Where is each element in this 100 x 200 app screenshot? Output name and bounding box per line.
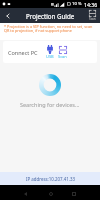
staticText: Scan [58,54,67,59]
staticText: IP address:10.207.41.33 [26,176,75,182]
staticText: Connect PC [8,49,38,56]
button[interactable]: Home [44,187,57,200]
button[interactable]: Back [0,8,15,23]
button[interactable]: Scan QR code [86,9,99,22]
staticText: Searching for devices... [20,101,80,108]
staticText: Projection Guide [26,12,75,20]
staticText: 10 % [72,1,82,7]
button[interactable]: Recent apps [67,187,80,200]
button[interactable]: Back [19,187,32,200]
button[interactable]: USB [46,45,54,59]
button[interactable]: Scan [58,46,67,59]
staticText: Scan [89,17,96,21]
staticText: * Projection is a VIP function, no need … [4,24,97,33]
staticText: USB [46,54,54,59]
staticText: 14:36 [84,1,98,8]
